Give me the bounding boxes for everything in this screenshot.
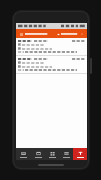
button[interactable] bbox=[16, 38, 87, 55]
button[interactable]: Calendar bbox=[31, 148, 45, 160]
button[interactable] bbox=[25, 32, 51, 36]
button[interactable] bbox=[61, 32, 79, 36]
button[interactable]: Compose bbox=[73, 148, 87, 160]
button[interactable]: Navigate up bbox=[18, 31, 24, 37]
button[interactable]: Mail bbox=[16, 148, 31, 160]
button[interactable]: Search bbox=[55, 31, 61, 37]
button[interactable]: Files bbox=[59, 148, 73, 160]
button[interactable] bbox=[16, 56, 87, 73]
button[interactable]: Contacts bbox=[45, 148, 59, 160]
button[interactable]: More options bbox=[79, 31, 85, 37]
